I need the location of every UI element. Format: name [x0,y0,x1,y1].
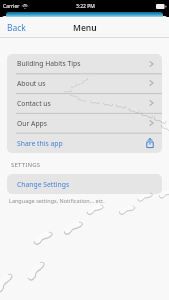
staticText: Back [7,22,26,34]
staticText: Menu [73,22,97,34]
staticText: Our Apps [17,119,48,128]
staticText: About us [17,79,46,88]
button[interactable]: About us [7,73,162,93]
button[interactable]: Our Apps [7,113,162,133]
button[interactable]: Contact us [7,93,162,113]
button[interactable]: Change Settings [7,174,162,194]
staticText: Language settings, Notification... etc. [9,197,105,204]
staticText: 3:22 PM [76,3,95,10]
staticText: Change Settings [17,180,70,189]
button[interactable]: Back [4,18,29,38]
staticText: Building Habits Tips [17,59,81,68]
staticText: Carrier [3,3,20,10]
button[interactable]: Share this app [7,133,162,153]
button[interactable]: Building Habits Tips [7,54,162,73]
staticText: SETTINGS [11,161,41,169]
staticText: Contact us [17,99,51,108]
staticText: Share this app [17,139,63,148]
